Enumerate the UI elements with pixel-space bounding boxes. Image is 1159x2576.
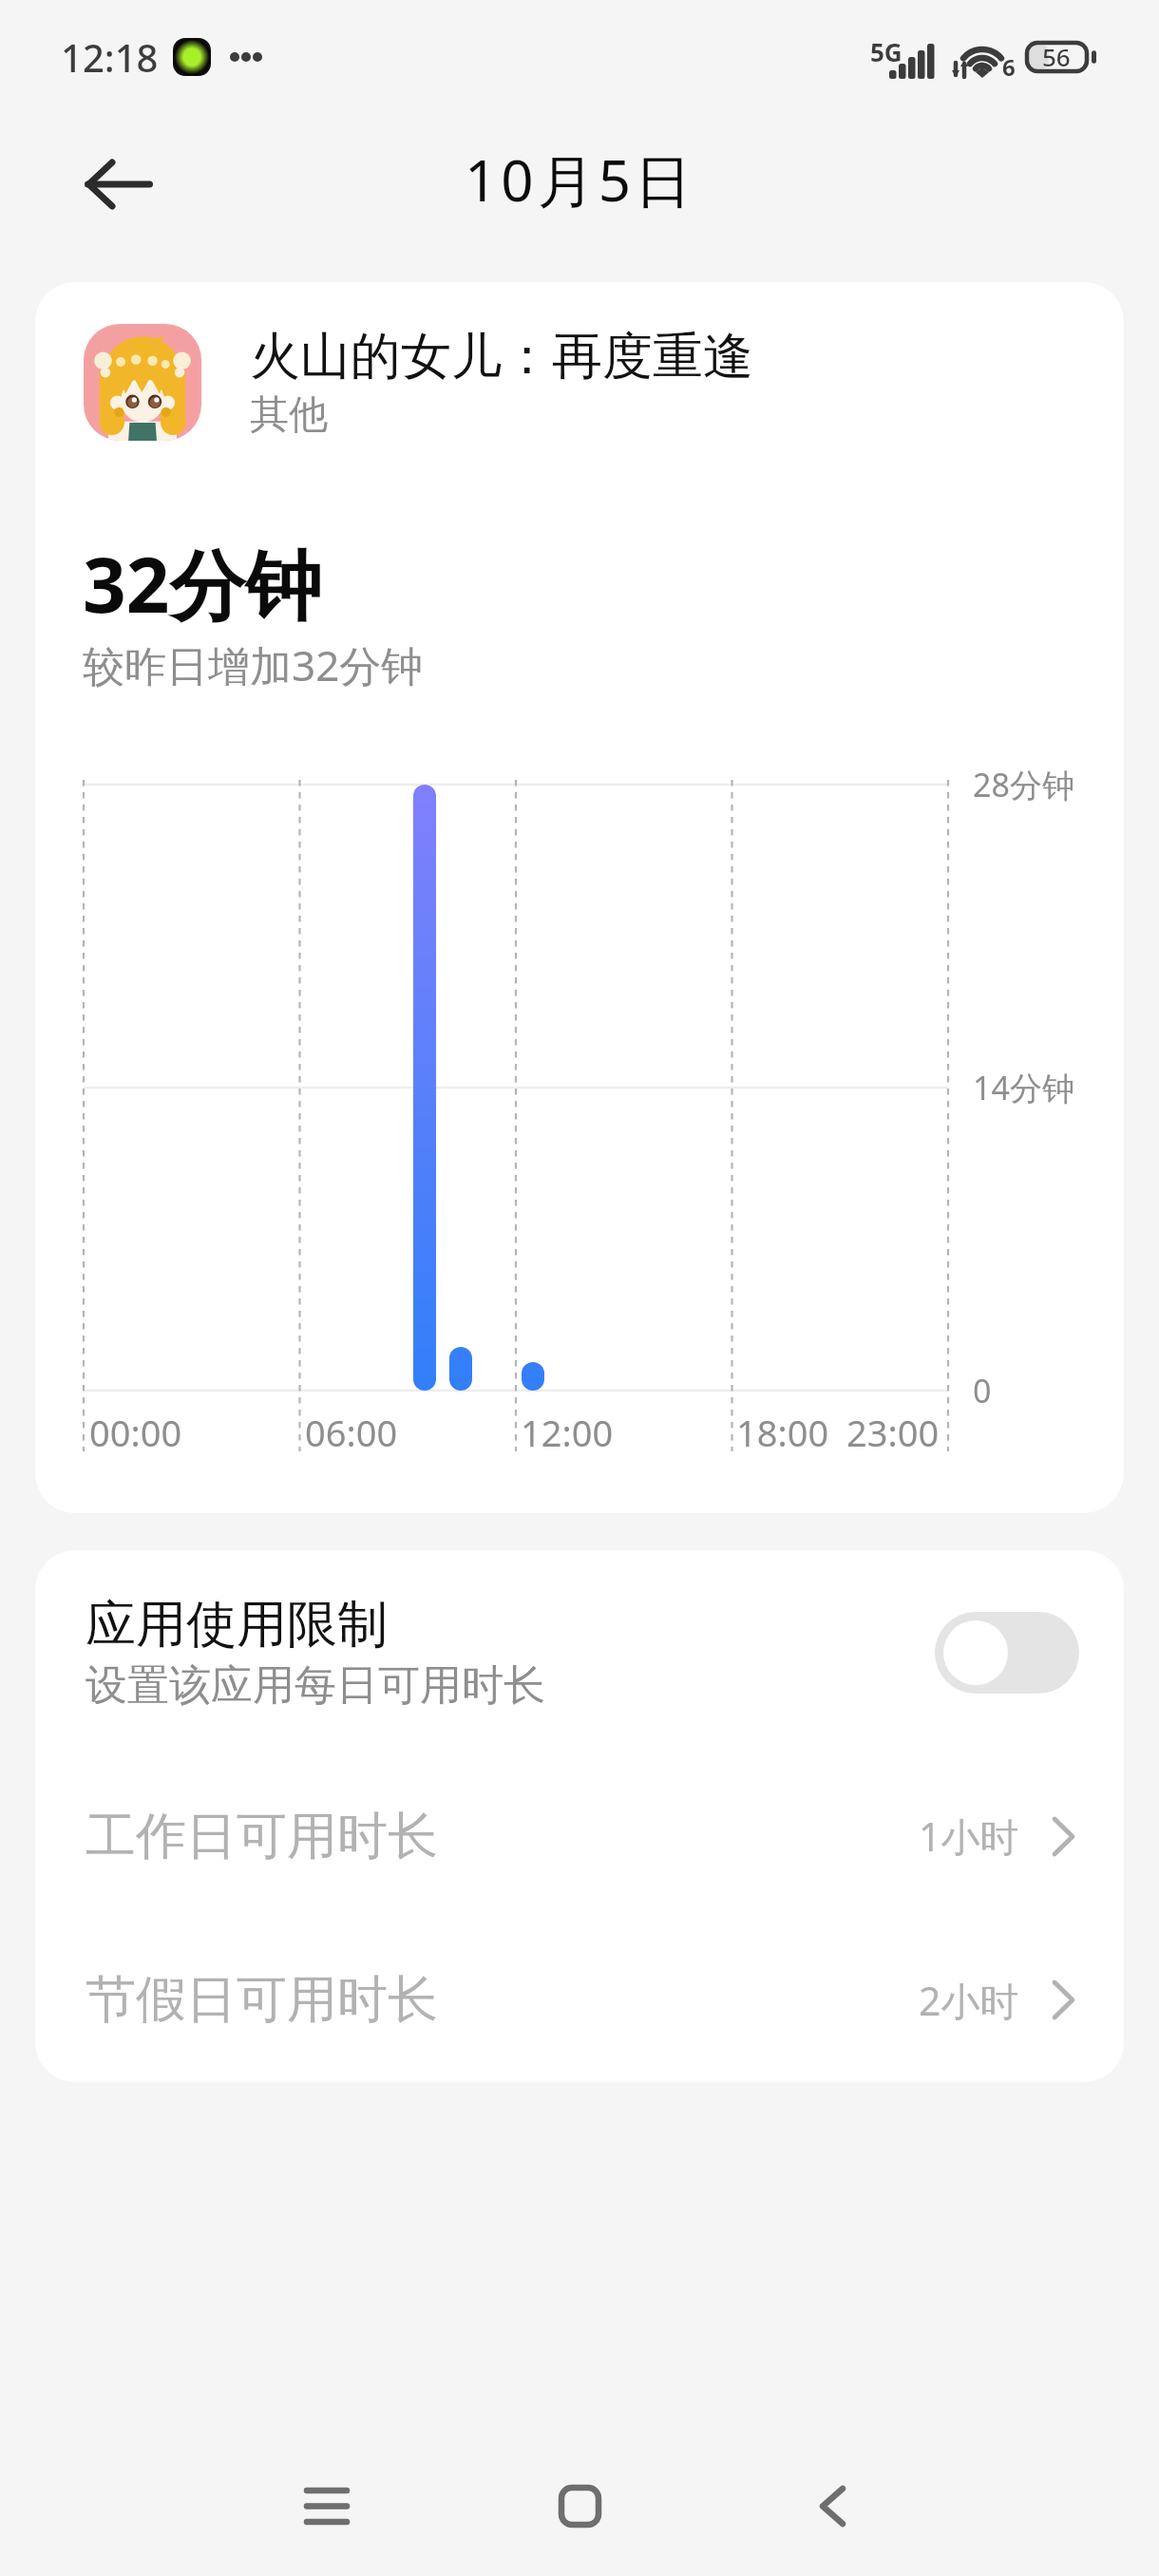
button[interactable]: Back (780, 2453, 884, 2558)
staticText: 2小时 (919, 1974, 1019, 2027)
staticText: 6 (1002, 51, 1016, 83)
staticText: 06:00 (305, 1408, 398, 1457)
staticText: 5G (870, 35, 902, 68)
staticText: 10月5日 (465, 141, 695, 218)
staticText: 应用使用限制 (85, 1593, 388, 1657)
staticText: 12:18 (61, 31, 159, 83)
button[interactable]: 节假日可用时长 (35, 1918, 1124, 2082)
button[interactable]: Recents (275, 2453, 379, 2558)
staticText: 火山的女儿：再度重逢 (250, 325, 753, 388)
staticText: 00:00 (89, 1408, 182, 1457)
button[interactable]: Back (66, 142, 171, 237)
button[interactable]: Home (527, 2453, 632, 2558)
button[interactable]: 应用使用限制 (35, 1550, 1124, 1754)
staticText: 23:00 (846, 1408, 940, 1457)
staticText: 32分钟 (83, 531, 322, 635)
staticText: 56 (1042, 40, 1071, 72)
staticText: 设置该应用每日可用时长 (85, 1659, 545, 1712)
button[interactable]: 火山的女儿：再度重逢 (35, 282, 1124, 486)
staticText: 28分钟 (973, 763, 1074, 806)
staticText: 14分钟 (973, 1066, 1074, 1109)
button[interactable]: 工作日可用时长 (35, 1754, 1124, 1918)
staticText: 0 (973, 1369, 992, 1412)
staticText: 其他 (250, 390, 328, 440)
staticText: 节假日可用时长 (85, 1968, 919, 2032)
staticText: 18:00 (736, 1408, 829, 1457)
staticText: 工作日可用时长 (85, 1805, 919, 1868)
staticText: 较昨日增加32分钟 (83, 636, 424, 693)
staticText: 1小时 (919, 1809, 1019, 1863)
staticText: 12:00 (521, 1408, 614, 1457)
button[interactable]: 应用使用限制开关 (935, 1612, 1079, 1694)
